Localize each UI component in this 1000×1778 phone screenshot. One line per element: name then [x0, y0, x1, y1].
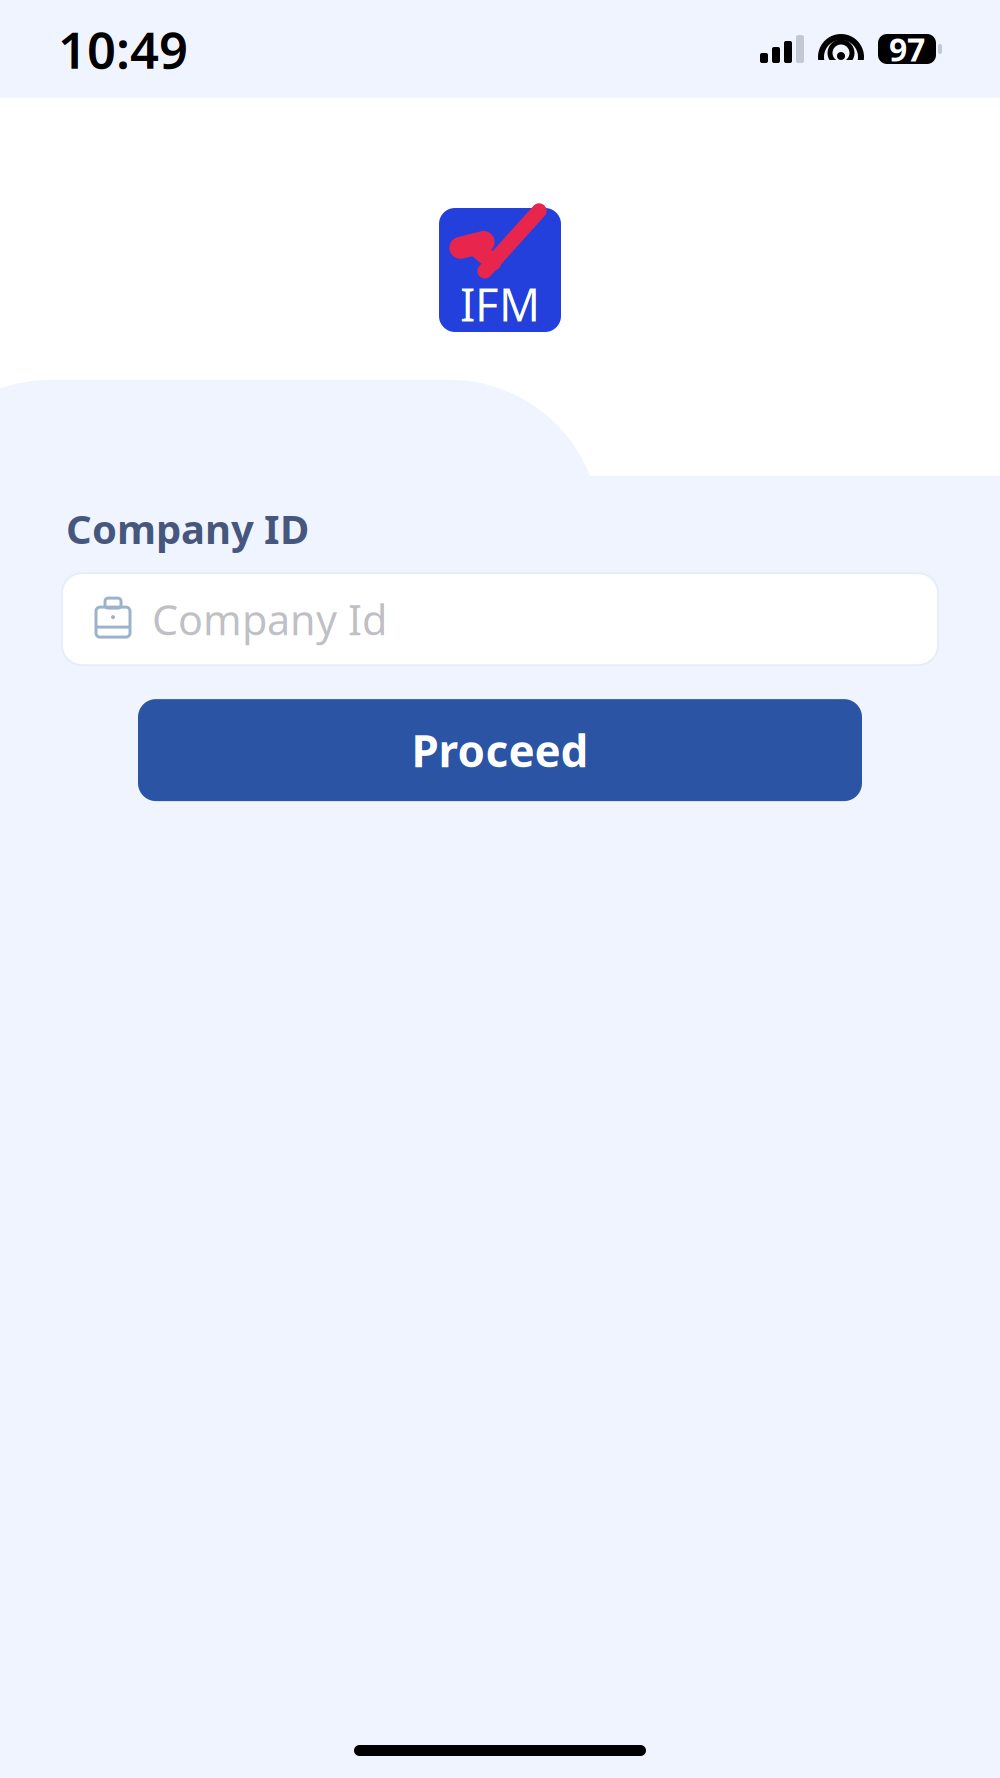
- staticText: IFM: [460, 274, 540, 334]
- staticText: Proceed: [411, 721, 588, 779]
- staticText: 10:49: [58, 15, 188, 83]
- button[interactable]: Proceed: [138, 699, 862, 801]
- staticText: Company ID: [66, 502, 309, 555]
- button[interactable]: Company Id: [62, 573, 938, 665]
- staticText: Company Id: [152, 592, 387, 647]
- staticText: 97: [889, 28, 925, 70]
